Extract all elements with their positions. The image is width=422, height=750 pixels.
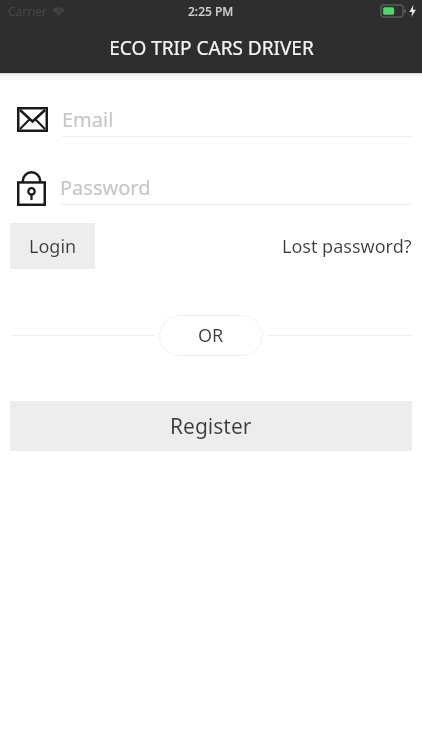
button[interactable]: Login [10, 223, 95, 269]
staticText: Register [170, 412, 252, 441]
button[interactable]: Email [17, 102, 412, 137]
button[interactable]: Register [10, 401, 412, 451]
staticText: Password [60, 174, 151, 201]
staticText: Login [29, 234, 77, 259]
button[interactable]: Lost password? [282, 234, 412, 259]
other: Password [17, 168, 46, 206]
staticText: ECO TRIP CARS DRIVER [109, 35, 314, 61]
button[interactable]: Password [17, 168, 412, 206]
staticText: 2:25 PM [188, 3, 234, 19]
button[interactable]: OR [159, 315, 263, 356]
staticText: Carrier [8, 3, 48, 19]
staticText: Lost password? [282, 234, 412, 259]
staticText: OR [198, 323, 224, 348]
staticText: Email [62, 106, 114, 133]
other: Email [17, 107, 48, 132]
